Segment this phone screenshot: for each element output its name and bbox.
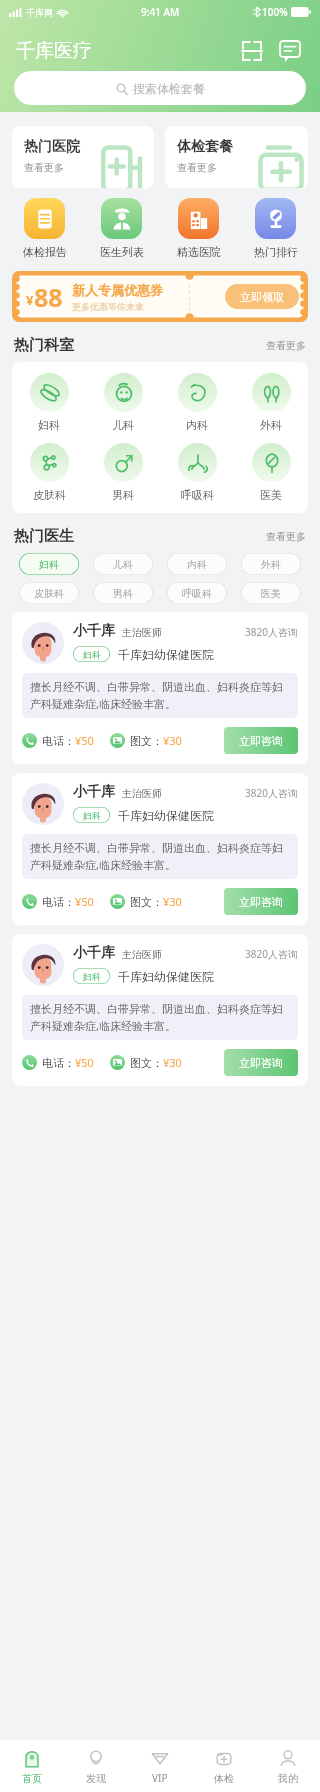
- button[interactable]: 小千库: [12, 612, 308, 764]
- staticText: 千库妇幼保健医院: [118, 808, 214, 823]
- staticText: 9:41 AM: [141, 5, 180, 19]
- staticText: 主治医师: [122, 948, 162, 961]
- staticText: 呼吸科: [182, 587, 212, 600]
- staticText: VIP: [152, 1771, 168, 1785]
- button[interactable]: ¥: [12, 271, 308, 322]
- staticText: 皮肤科: [33, 488, 66, 502]
- button[interactable]: 热门医院: [12, 126, 154, 188]
- staticText: 小千库: [73, 622, 115, 640]
- staticText: 外科: [261, 558, 281, 571]
- button[interactable]: 立即咨询: [224, 727, 298, 754]
- button[interactable]: 外科: [241, 553, 301, 575]
- staticText: 内科: [187, 558, 207, 571]
- button[interactable]: 皮肤科: [12, 443, 86, 502]
- staticText: 查看更多: [266, 530, 306, 543]
- button[interactable]: 精选医院: [160, 198, 237, 259]
- button[interactable]: Scan QR code: [234, 33, 270, 69]
- button[interactable]: 小千库: [12, 934, 308, 1086]
- staticText: 电话：: [42, 1056, 75, 1070]
- staticText: 儿科: [112, 418, 134, 432]
- staticText: 图文：: [130, 895, 163, 909]
- staticText: 体检套餐: [177, 138, 233, 156]
- staticText: 搜索体检套餐: [133, 81, 205, 96]
- staticText: 擅长月经不调、白带异常、阴道出血、妇科炎症等妇产科疑难杂症,临床经验丰富。: [30, 841, 290, 872]
- staticText: ¥30: [163, 1055, 182, 1070]
- staticText: 立即领取: [240, 290, 284, 304]
- button[interactable]: 医美: [234, 443, 308, 502]
- staticText: ¥50: [75, 894, 94, 909]
- button[interactable]: 医美: [241, 582, 301, 604]
- staticText: 热门科室: [14, 336, 74, 355]
- button[interactable]: 妇科: [12, 373, 86, 432]
- staticText: 电话：: [42, 734, 75, 748]
- staticText: 主治医师: [122, 787, 162, 800]
- button[interactable]: 男科: [93, 582, 153, 604]
- staticText: 擅长月经不调、白带异常、阴道出血、妇科炎症等妇产科疑难杂症,临床经验丰富。: [30, 680, 290, 711]
- button[interactable]: 立即咨询: [224, 888, 298, 915]
- button[interactable]: 呼吸科: [160, 443, 234, 502]
- button[interactable]: VIP: [128, 1740, 192, 1792]
- staticText: ¥50: [75, 1055, 94, 1070]
- button[interactable]: 体检报告: [6, 198, 83, 259]
- button[interactable]: 男科: [86, 443, 160, 502]
- staticText: 3820人咨询: [245, 625, 298, 639]
- staticText: 查看更多: [177, 161, 217, 174]
- button[interactable]: 体检: [192, 1740, 256, 1792]
- staticText: 外科: [260, 418, 282, 432]
- staticText: 图文：: [130, 1056, 163, 1070]
- staticText: 首页: [22, 1772, 42, 1785]
- button[interactable]: 妇科: [19, 553, 79, 575]
- staticText: 88: [34, 280, 63, 314]
- button[interactable]: 内科: [167, 553, 227, 575]
- staticText: 更多优惠等你来拿: [72, 301, 144, 312]
- staticText: 电话：: [42, 895, 75, 909]
- button[interactable]: 查看更多: [266, 530, 306, 543]
- staticText: 医生列表: [100, 245, 144, 259]
- button[interactable]: 搜索体检套餐: [14, 71, 306, 105]
- staticText: 3820人咨询: [245, 947, 298, 961]
- staticText: 体检报告: [23, 245, 67, 259]
- button[interactable]: 内科: [160, 373, 234, 432]
- staticText: 体检: [214, 1772, 234, 1785]
- button[interactable]: 体检套餐: [165, 126, 308, 188]
- button[interactable]: 立即领取: [225, 284, 299, 309]
- button[interactable]: 皮肤科: [19, 582, 79, 604]
- staticText: 查看更多: [266, 339, 306, 352]
- staticText: 千库妇幼保健医院: [118, 647, 214, 662]
- staticText: 图文：: [130, 734, 163, 748]
- button[interactable]: 查看更多: [266, 339, 306, 352]
- button[interactable]: 立即咨询: [224, 1049, 298, 1076]
- staticText: 医美: [260, 488, 282, 502]
- staticText: 新人专属优惠券: [72, 282, 163, 298]
- staticText: 立即咨询: [239, 734, 283, 748]
- button[interactable]: 呼吸科: [167, 582, 227, 604]
- button[interactable]: 儿科: [86, 373, 160, 432]
- staticText: ¥30: [163, 894, 182, 909]
- button[interactable]: 医生列表: [83, 198, 160, 259]
- staticText: 男科: [112, 488, 134, 502]
- button[interactable]: Messages: [272, 33, 308, 69]
- staticText: 热门医院: [24, 138, 80, 156]
- staticText: 千库妇幼保健医院: [118, 969, 214, 984]
- staticText: 千库网: [26, 7, 53, 18]
- staticText: ¥30: [163, 733, 182, 748]
- button[interactable]: 我的: [256, 1740, 320, 1792]
- button[interactable]: 小千库: [12, 773, 308, 925]
- staticText: 擅长月经不调、白带异常、阴道出血、妇科炎症等妇产科疑难杂症,临床经验丰富。: [30, 1002, 290, 1033]
- button[interactable]: 热门排行: [237, 198, 314, 259]
- staticText: 内科: [186, 418, 208, 432]
- staticText: 热门排行: [254, 245, 298, 259]
- staticText: 妇科: [39, 558, 59, 571]
- button[interactable]: 儿科: [93, 553, 153, 575]
- staticText: 发现: [86, 1772, 106, 1785]
- staticText: 妇科: [38, 418, 60, 432]
- staticText: 100%: [262, 5, 288, 19]
- staticText: 精选医院: [177, 245, 221, 259]
- staticText: 立即咨询: [239, 895, 283, 909]
- staticText: 妇科: [83, 649, 101, 660]
- button[interactable]: 发现: [64, 1740, 128, 1792]
- staticText: 查看更多: [24, 161, 64, 174]
- staticText: 皮肤科: [34, 587, 64, 600]
- button[interactable]: 外科: [234, 373, 308, 432]
- button[interactable]: 首页: [0, 1740, 64, 1792]
